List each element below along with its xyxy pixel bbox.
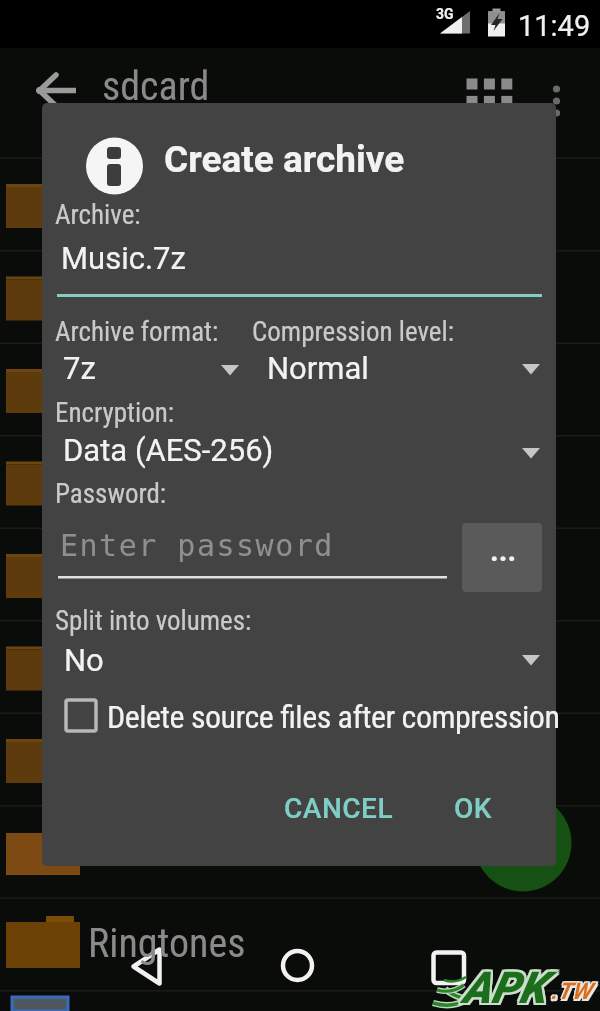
- staticText: .TW: [550, 977, 590, 1004]
- staticText: No: [64, 642, 104, 678]
- staticText: APK: [464, 960, 549, 1011]
- staticText: APK: [460, 960, 545, 1011]
- staticText: Compression level:: [252, 316, 454, 348]
- staticText: .TW: [553, 977, 593, 1004]
- staticText: .TW: [551, 977, 591, 1004]
- button[interactable]: OK: [428, 775, 538, 835]
- staticText: Split into volumes:: [55, 605, 252, 637]
- staticText: APK: [462, 962, 547, 1011]
- staticText: .TW: [551, 980, 591, 1007]
- button[interactable]: [268, 938, 328, 996]
- staticText: 3G: [436, 6, 454, 22]
- staticText: APK: [460, 964, 545, 1011]
- staticText: APK: [464, 964, 549, 1011]
- staticText: APK: [462, 960, 547, 1011]
- button[interactable]: Music.7z: [48, 232, 542, 298]
- button[interactable]: 7z: [55, 344, 250, 390]
- button[interactable]: Enter password: [55, 515, 447, 581]
- button[interactable]: [418, 938, 480, 996]
- staticText: Normal: [267, 350, 369, 386]
- staticText: Ringtones: [88, 920, 246, 967]
- button[interactable]: [534, 60, 580, 118]
- staticText: 11:49: [518, 9, 591, 43]
- staticText: APK: [460, 962, 545, 1011]
- staticText: Delete source files after compression: [107, 698, 560, 736]
- staticText: APK: [464, 962, 549, 1011]
- button[interactable]: Normal: [258, 344, 542, 390]
- button[interactable]: ...: [462, 523, 542, 592]
- staticText: ...: [490, 533, 517, 568]
- button[interactable]: CANCEL: [262, 775, 412, 835]
- staticText: Data (AES-256): [63, 432, 274, 468]
- button[interactable]: Data (AES-256): [55, 428, 542, 474]
- button[interactable]: [120, 938, 182, 996]
- staticText: 7z: [63, 350, 96, 386]
- staticText: .TW: [550, 980, 590, 1007]
- button[interactable]: No: [55, 636, 542, 686]
- staticText: .TW: [550, 978, 590, 1005]
- staticText: Archive format:: [55, 316, 219, 348]
- button[interactable]: [55, 692, 550, 738]
- staticText: Archive:: [55, 199, 141, 231]
- staticText: APK: [462, 964, 547, 1011]
- staticText: Music.7z: [61, 240, 186, 276]
- staticText: sdcard: [102, 63, 210, 110]
- button[interactable]: [24, 60, 90, 120]
- staticText: Enter password: [60, 528, 334, 563]
- staticText: .TW: [553, 978, 593, 1005]
- staticText: CANCEL: [284, 792, 394, 825]
- button[interactable]: [452, 60, 530, 118]
- staticText: Encryption:: [55, 397, 175, 429]
- staticText: OK: [454, 792, 492, 825]
- staticText: .TW: [553, 980, 593, 1007]
- staticText: Create archive: [164, 138, 405, 181]
- staticText: Password:: [55, 478, 167, 510]
- staticText: .TW: [551, 978, 591, 1005]
